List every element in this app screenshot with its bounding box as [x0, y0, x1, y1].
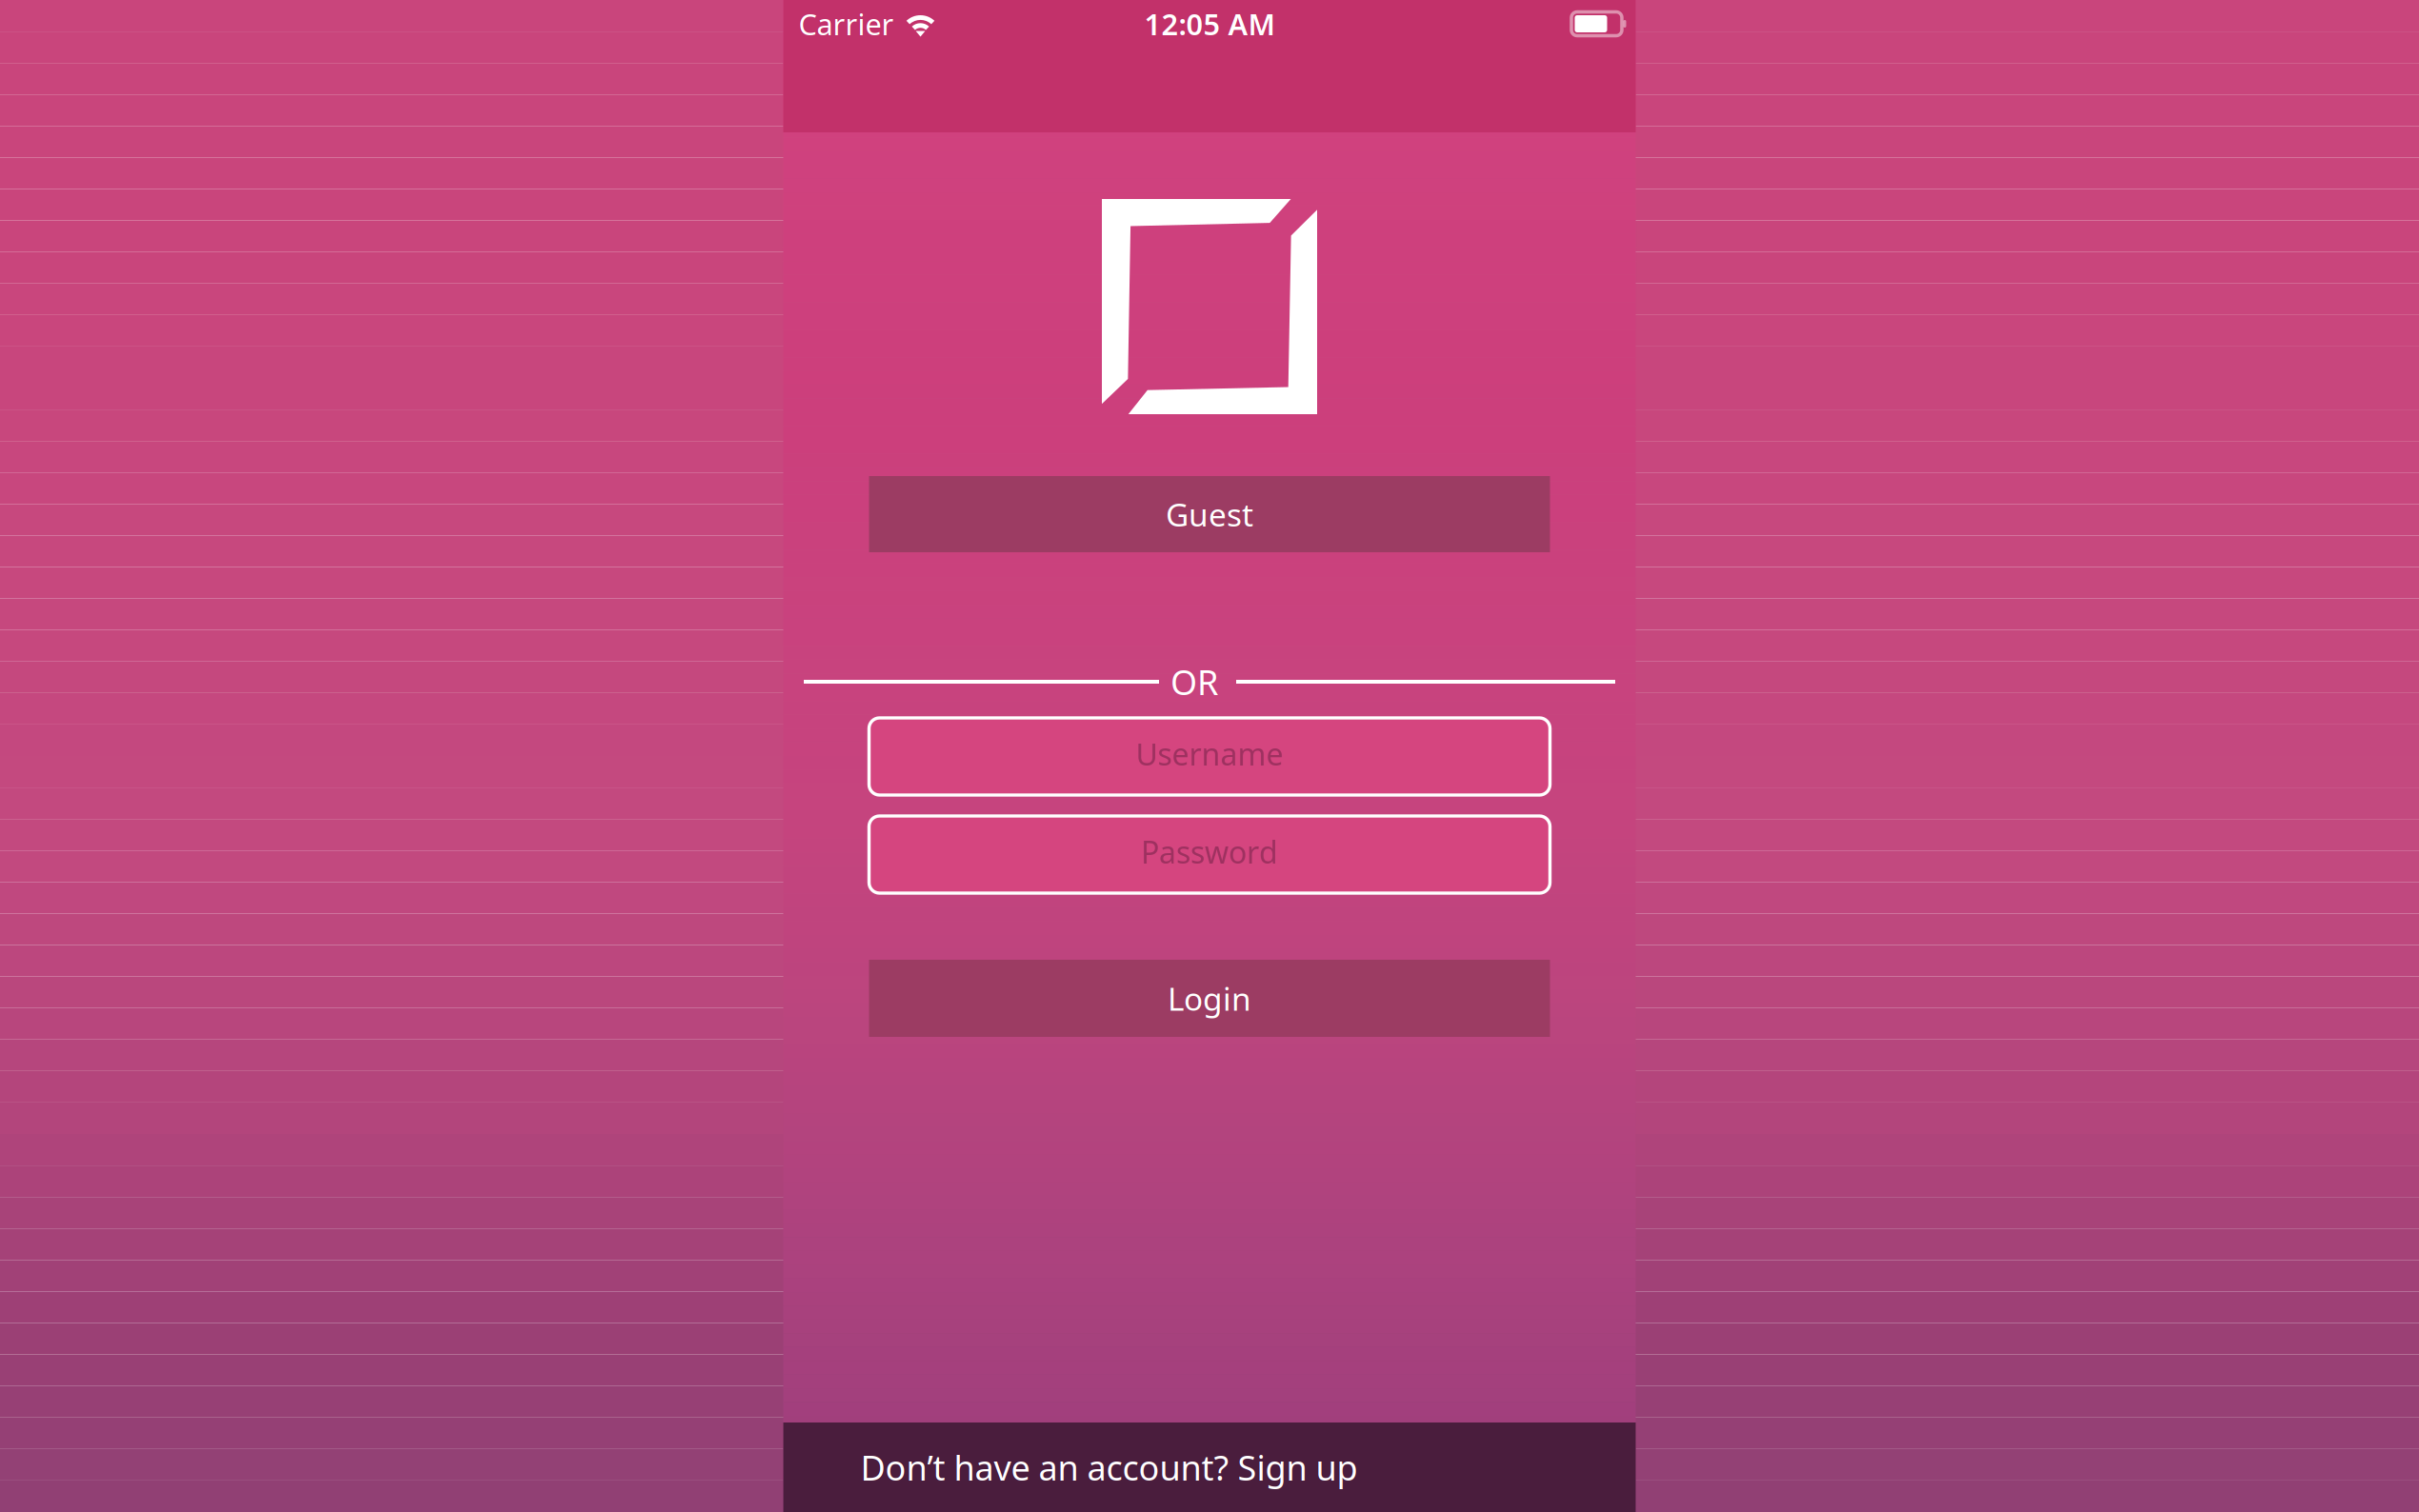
button[interactable]: Guest: [869, 476, 1550, 552]
button[interactable]: Password: [869, 816, 1550, 893]
button[interactable]: Login: [869, 960, 1550, 1037]
staticText: OR: [1170, 659, 1218, 704]
staticText: Password: [1141, 832, 1278, 872]
staticText: Login: [1168, 977, 1251, 1019]
button[interactable]: Don’t have an account? Sign up: [783, 1422, 1636, 1512]
staticText: Carrier: [799, 4, 894, 43]
staticText: 12:05 AM: [1144, 4, 1275, 43]
button[interactable]: Username: [869, 718, 1550, 795]
staticText: Username: [1136, 733, 1283, 774]
staticText: Don’t have an account? Sign up: [860, 1444, 1358, 1490]
staticText: Guest: [1166, 493, 1253, 535]
